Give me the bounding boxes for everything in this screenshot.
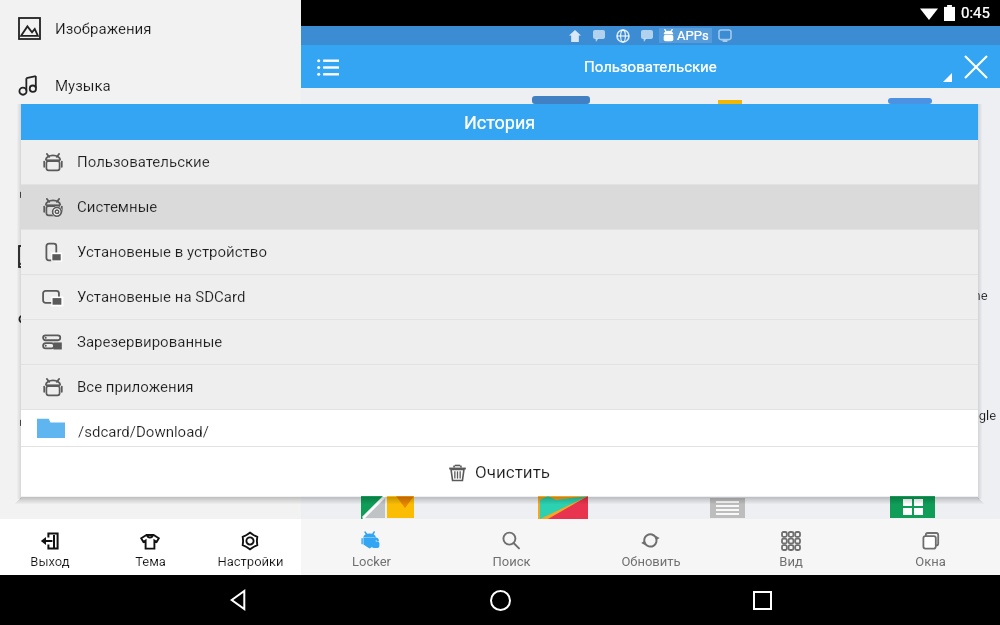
button[interactable]: Системные [21, 185, 978, 229]
button[interactable]: Home [476, 576, 524, 624]
staticText: Chrome [942, 288, 988, 303]
staticText: Поиск [492, 554, 531, 569]
button[interactable]: Back [214, 576, 262, 624]
button[interactable]: Close [959, 50, 993, 84]
staticText: Системные [77, 198, 158, 216]
button[interactable]: Вид [721, 519, 861, 575]
staticText: Архивы [55, 191, 110, 209]
button[interactable]: Архивы [0, 171, 301, 228]
button[interactable]: Выход [0, 519, 100, 575]
button[interactable]: Диск [0, 399, 301, 456]
button[interactable]: Locker [301, 519, 441, 575]
button[interactable]: Окна [861, 519, 1000, 575]
staticText: Locker [352, 554, 391, 569]
button[interactable]: Скрытые [0, 228, 301, 285]
button[interactable]: Зарезервированные [21, 320, 978, 364]
staticText: Установеные в устройство [77, 243, 267, 261]
button[interactable]: Поиск [441, 519, 581, 575]
button[interactable]: Избранное [0, 285, 301, 342]
staticText: Зарезервированные [77, 333, 223, 351]
staticText: Скрытые [55, 248, 120, 266]
staticText: Тема [135, 554, 166, 569]
button[interactable]: Recents [738, 576, 786, 624]
staticText: Пользовательские [77, 153, 210, 171]
staticText: Установеные на SDCard [77, 288, 246, 306]
button[interactable]: Пользовательские [21, 140, 978, 184]
staticText: Корзина [55, 362, 115, 380]
button[interactable]: Все приложения [21, 365, 978, 409]
staticText: Все приложения [77, 378, 194, 396]
staticText: Документы [55, 134, 137, 152]
staticText: Настройки [217, 554, 284, 569]
staticText: Очистить [475, 462, 551, 482]
button[interactable]: Документы [0, 114, 301, 171]
staticText: Окна [915, 554, 946, 569]
button[interactable]: /sdcard/Download/ [21, 410, 978, 446]
staticText: Пользовательские [584, 58, 717, 76]
staticText: История [464, 112, 536, 133]
button[interactable]: Тема [100, 519, 200, 575]
staticText: APPs [677, 28, 709, 43]
button[interactable]: Установеные на SDCard [21, 275, 978, 319]
button[interactable]: Menu [312, 51, 344, 83]
staticText: 0:45 [961, 4, 990, 22]
button[interactable]: Очистить [21, 447, 978, 496]
staticText: Изображения [55, 20, 152, 38]
staticText: Выход [30, 554, 70, 569]
button[interactable]: Корзина [0, 342, 301, 399]
staticText: Вид [779, 554, 803, 569]
button[interactable]: Музыка [0, 57, 301, 114]
staticText: /sdcard/Download/ [78, 423, 209, 441]
staticText: Музыка [55, 77, 111, 95]
staticText: Обновить [621, 554, 681, 569]
button[interactable]: Установеные в устройство [21, 230, 978, 274]
button[interactable]: Настройки [200, 519, 300, 575]
staticText: Избранное [55, 305, 132, 323]
staticText: Google [955, 408, 997, 423]
button[interactable]: Обновить [581, 519, 721, 575]
button[interactable]: Изображения [0, 0, 301, 57]
staticText: Диск [55, 419, 91, 437]
